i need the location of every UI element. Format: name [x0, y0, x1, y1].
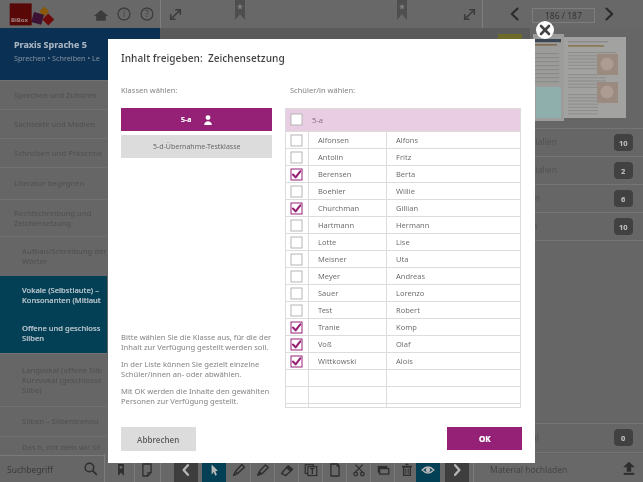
button[interactable]: Upload: [622, 461, 636, 475]
button[interactable]: Expand: [167, 6, 184, 23]
staticText: Klassen wählen:: [121, 85, 178, 95]
button[interactable]: Select: [285, 302, 521, 318]
staticText: Rechtschreibung und Zeichensetzung: [14, 208, 92, 228]
staticText: Suchbegriff: [7, 464, 54, 476]
button[interactable]: al: [530, 423, 643, 452]
button[interactable]: Bookmark: [235, 0, 245, 20]
staticText: 5-d-Übernahme-Testklasse: [153, 142, 241, 152]
button[interactable]: Bookmark: [397, 0, 407, 20]
button[interactable]: n: [530, 212, 643, 240]
button[interactable]: Select: [291, 305, 302, 316]
button[interactable]: Select: [291, 271, 302, 282]
button[interactable]: Select: [291, 339, 302, 350]
button[interactable]: Select: [285, 353, 521, 369]
button[interactable]: 5-d-Übernahme-Testklasse: [121, 135, 272, 158]
button[interactable]: Copy: [372, 458, 394, 482]
button[interactable]: Text box: [300, 458, 322, 482]
button[interactable]: Select: [285, 336, 521, 352]
button[interactable]: 186 / 187: [532, 8, 595, 23]
button[interactable]: Silben – Silbentrennu: [0, 406, 107, 436]
button[interactable]: Next page: [601, 6, 617, 22]
button[interactable]: Suchbegriff: [0, 455, 107, 482]
button[interactable]: Bookmarks: [110, 458, 132, 482]
button[interactable]: Offene und geschloss Silben: [0, 313, 107, 353]
button[interactable]: Select: [285, 166, 521, 182]
button[interactable]: OK: [447, 427, 522, 450]
button[interactable]: rialien: [530, 128, 643, 156]
button[interactable]: Cut: [348, 458, 370, 482]
button[interactable]: Info: [117, 7, 131, 21]
button[interactable]: Select: [285, 268, 521, 284]
button[interactable]: Sprechen und Zuhören: [0, 80, 107, 109]
button[interactable]: Vokale (Selbstlaute) – Konsonanten (Mitl…: [0, 276, 107, 313]
button[interactable]: Select: [285, 200, 521, 216]
button[interactable]: Preview: [416, 458, 440, 482]
button[interactable]: Das h, mit dem wir Sil trennen: [0, 436, 107, 468]
button[interactable]: Select: [291, 114, 302, 125]
button[interactable]: Pages: [136, 458, 158, 482]
staticText: Hermann: [396, 220, 430, 230]
button[interactable]: Select: [291, 356, 302, 367]
staticText: Praxis Sprache 5: [14, 38, 87, 50]
button[interactable]: Schreiben und Präsentie: [0, 138, 107, 167]
staticText: ochladen: [532, 461, 569, 473]
staticText: i: [123, 8, 126, 20]
button[interactable]: Pen: [228, 458, 250, 482]
button[interactable]: Home: [93, 7, 109, 23]
button[interactable]: Select: [285, 217, 521, 233]
button[interactable]: Highlighter: [252, 458, 274, 482]
staticText: Offene und geschloss Silben: [22, 323, 101, 343]
button[interactable]: Help: [140, 7, 154, 21]
staticText: Schüler/in wählen:: [290, 85, 356, 95]
button[interactable]: Select: [285, 183, 521, 199]
button[interactable]: Aufbau/Schreibung der Wörter: [0, 236, 107, 276]
button[interactable]: Select: [285, 132, 521, 148]
staticText: rialien: [532, 136, 557, 148]
button[interactable]: Delete: [396, 458, 418, 482]
button[interactable]: Select: [285, 285, 521, 301]
staticText: n: [532, 220, 538, 232]
staticText: In der Liste können Sie gezielt einzelne…: [121, 359, 260, 380]
button[interactable]: Literatur begegnen: [0, 167, 107, 199]
button[interactable]: Abbrechen: [121, 427, 196, 451]
button[interactable]: BiBox: [9, 3, 54, 26]
button[interactable]: Select: [291, 152, 302, 163]
button[interactable]: Previous page: [507, 6, 523, 22]
staticText: Berensen: [318, 169, 352, 179]
button[interactable]: Select: [291, 322, 302, 333]
button[interactable]: Select: [285, 251, 521, 267]
button[interactable]: Select: [285, 319, 521, 335]
button[interactable]: Select: [291, 220, 302, 231]
button[interactable]: rialien: [530, 156, 643, 184]
staticText: m: [532, 192, 540, 204]
button[interactable]: Select: [291, 169, 302, 180]
button[interactable]: Select: [285, 108, 521, 131]
button[interactable]: Langvokal (offene Silb Kurzvokal (geschl…: [0, 353, 107, 406]
button[interactable]: Select: [291, 254, 302, 265]
button[interactable]: Select: [291, 288, 302, 299]
button[interactable]: Select: [285, 149, 521, 165]
staticText: Literatur begegnen: [14, 178, 85, 188]
button[interactable]: Select: [285, 234, 521, 250]
button[interactable]: Rechtschreibung und Zeichensetzung: [0, 199, 107, 236]
staticText: Hartmann: [318, 220, 355, 230]
staticText: Andreas: [396, 271, 426, 281]
button[interactable]: Collapse: [461, 6, 478, 23]
button[interactable]: 5-a: [121, 108, 272, 131]
staticText: Antolin: [318, 152, 344, 162]
button[interactable]: Back: [174, 458, 198, 482]
button[interactable]: Close: [536, 21, 554, 39]
button[interactable]: Next: [445, 458, 469, 482]
button[interactable]: New page: [324, 458, 346, 482]
button[interactable]: Select: [291, 203, 302, 214]
button[interactable]: Select: [291, 186, 302, 197]
button[interactable]: Eraser: [276, 458, 298, 482]
button[interactable]: Select: [291, 135, 302, 146]
button[interactable]: Sachtexte und Medien: [0, 109, 107, 138]
button[interactable]: Select: [202, 458, 226, 482]
staticText: Silben – Silbentrennu: [22, 416, 99, 426]
button[interactable]: Select: [291, 237, 302, 248]
button[interactable]: m: [530, 184, 643, 212]
staticText: rialien: [532, 164, 557, 176]
button[interactable]: ochladen: [530, 452, 643, 482]
